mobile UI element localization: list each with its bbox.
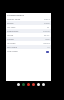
button[interactable]: Font scale [6, 45, 51, 49]
staticText: Phone [44, 22, 50, 25]
button[interactable]: Add config [6, 50, 51, 53]
staticText: Device [7, 22, 14, 25]
button[interactable]: Configurations [6, 13, 51, 16]
staticText: Orientation [7, 30, 19, 33]
staticText: Font scale [7, 46, 17, 49]
button[interactable]: Theme [6, 37, 51, 41]
staticText: Normal [43, 42, 50, 45]
button[interactable]: App [27, 83, 30, 86]
staticText: en-US [44, 34, 50, 37]
button[interactable]: Locale [6, 33, 51, 37]
staticText: Display name [7, 18, 21, 21]
staticText: Light [45, 38, 50, 41]
button[interactable]: Device [6, 21, 51, 25]
button[interactable]: App [17, 83, 20, 86]
button[interactable]: App [37, 83, 40, 86]
staticText: API level [7, 26, 16, 29]
staticText: Add config [7, 50, 18, 53]
button[interactable]: App [32, 83, 35, 86]
staticText: Portrait [43, 30, 50, 33]
staticText: Pixel 6 [44, 18, 50, 21]
staticText: Theme [7, 38, 14, 41]
button[interactable]: App [42, 83, 45, 86]
staticText: 1.0 [47, 46, 50, 49]
staticText: Ui mode [7, 42, 16, 45]
button[interactable]: Display name [6, 17, 51, 21]
staticText: Configurations [7, 13, 24, 16]
staticText: 33 [47, 26, 50, 29]
button[interactable]: API level [6, 25, 51, 29]
button[interactable]: Apply [46, 51, 49, 53]
button[interactable]: Ui mode [6, 41, 51, 45]
button[interactable]: Orientation [6, 29, 51, 33]
button[interactable]: App [22, 83, 25, 86]
staticText: Locale [7, 34, 14, 37]
